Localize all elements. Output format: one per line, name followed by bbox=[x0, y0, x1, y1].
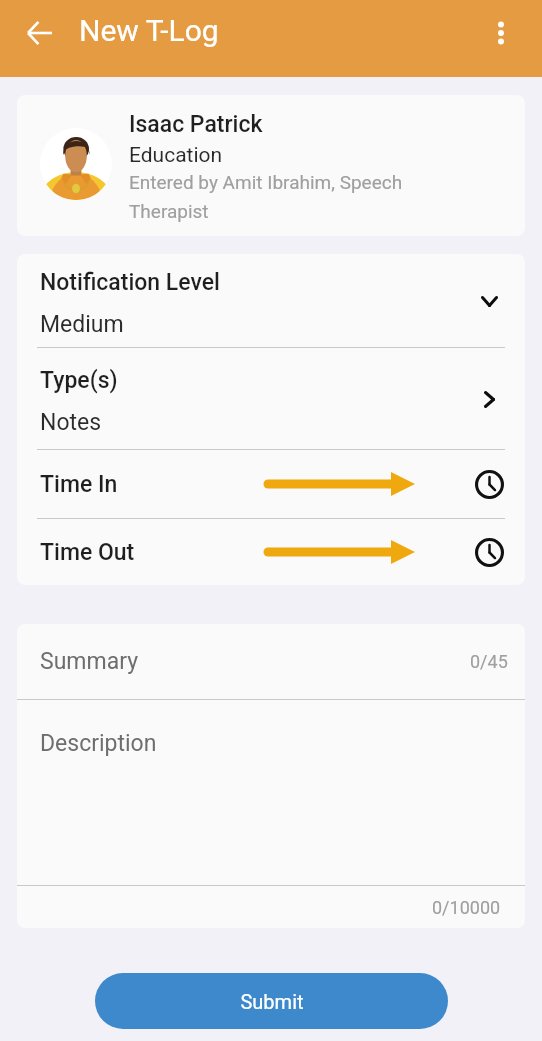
button[interactable]: Submit bbox=[95, 973, 448, 1029]
button[interactable]: Summary bbox=[17, 624, 525, 699]
button[interactable]: Description bbox=[17, 700, 525, 885]
staticText: Notes bbox=[40, 409, 102, 436]
staticText: Medium bbox=[40, 311, 124, 338]
staticText: Description bbox=[40, 730, 157, 757]
staticText: Entered by Amit Ibrahim, Speech Therapis… bbox=[129, 171, 429, 223]
staticText: 0/10000 bbox=[432, 897, 501, 918]
button[interactable]: Pick time bbox=[471, 466, 507, 502]
staticText: Notification Level bbox=[40, 269, 220, 296]
button[interactable]: Back bbox=[16, 9, 64, 57]
button[interactable]: Notification Level bbox=[17, 254, 525, 347]
staticText: Time Out bbox=[40, 539, 135, 566]
staticText: Time In bbox=[40, 471, 118, 498]
button[interactable]: Pick time bbox=[471, 534, 507, 570]
button[interactable]: Expand bbox=[469, 281, 509, 321]
button[interactable]: Time Out bbox=[17, 519, 525, 585]
staticText: Education bbox=[129, 143, 223, 168]
staticText: 0/45 bbox=[470, 651, 508, 672]
button[interactable]: Open bbox=[469, 379, 509, 419]
staticText: Type(s) bbox=[40, 367, 118, 394]
button[interactable]: Time In bbox=[17, 450, 525, 518]
button[interactable]: More options bbox=[477, 9, 525, 57]
staticText: New T-Log bbox=[79, 13, 219, 48]
staticText: Submit bbox=[240, 990, 304, 1013]
button[interactable]: Type(s) bbox=[17, 348, 525, 449]
button[interactable]: Isaac Patrick bbox=[17, 95, 525, 236]
staticText: Summary bbox=[40, 648, 139, 675]
staticText: Isaac Patrick bbox=[129, 111, 263, 138]
